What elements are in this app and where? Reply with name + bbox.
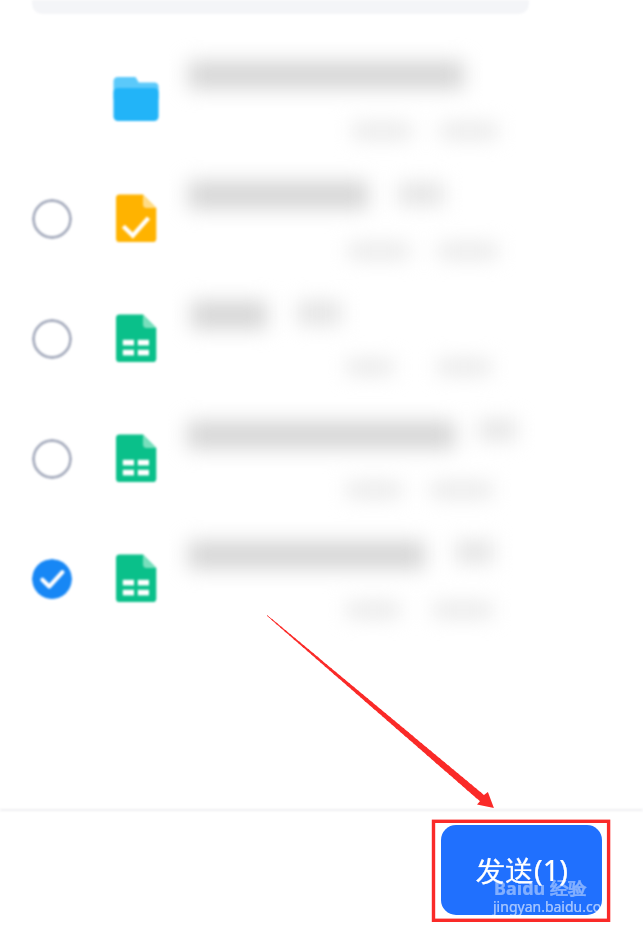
staticText: jingyan.baidu.com [493, 897, 615, 916]
button[interactable]: Deselect file [32, 559, 72, 599]
button[interactable]: File row 3 [0, 279, 643, 399]
staticText: 发送(1) [476, 850, 568, 890]
staticText: Baidu 经验 [494, 876, 586, 901]
button[interactable]: File row 4 [0, 399, 643, 519]
button[interactable]: Select file [32, 439, 72, 479]
button[interactable]: 发送(1) [441, 825, 602, 915]
button[interactable]: Select file [32, 199, 72, 239]
button[interactable]: File row 5 [0, 519, 643, 639]
button[interactable]: Select file [32, 319, 72, 359]
button[interactable]: File row 1 [0, 39, 643, 159]
button[interactable]: File row 2 [0, 159, 643, 279]
